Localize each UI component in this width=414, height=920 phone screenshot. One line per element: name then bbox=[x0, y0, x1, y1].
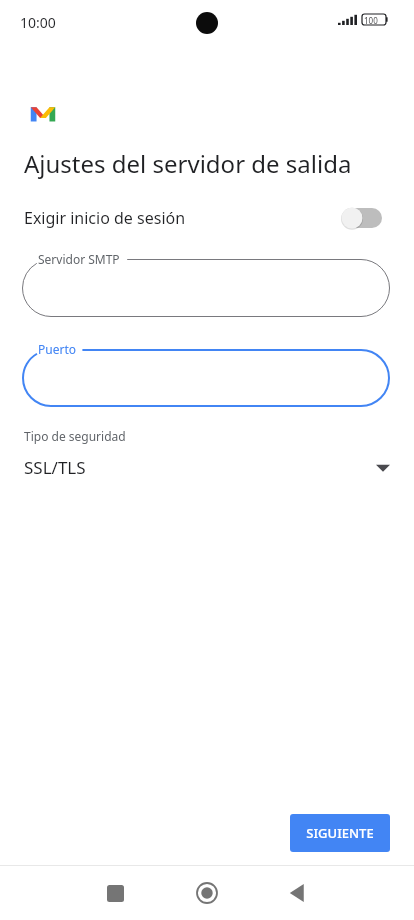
staticText: SIGUIENTE bbox=[306, 824, 374, 842]
staticText: Puerto bbox=[38, 341, 76, 357]
button[interactable]: Back bbox=[266, 866, 328, 920]
staticText: Ajustes del servidor de salida bbox=[24, 147, 352, 180]
button[interactable]: Servidor SMTP bbox=[22, 259, 390, 317]
staticText: Servidor SMTP bbox=[38, 251, 120, 267]
button[interactable]: SIGUIENTE bbox=[290, 814, 390, 852]
button[interactable]: Exigir inicio de sesión bbox=[0, 196, 414, 240]
staticText: Exigir inicio de sesión bbox=[24, 207, 186, 229]
button[interactable]: Puerto bbox=[22, 349, 390, 407]
button[interactable] bbox=[338, 203, 390, 233]
staticText: Tipo de seguridad bbox=[24, 428, 126, 444]
button[interactable]: Tipo de seguridad bbox=[0, 428, 414, 490]
button[interactable]: Recents bbox=[84, 866, 146, 920]
staticText: 100 bbox=[364, 15, 378, 26]
staticText: 10:00 bbox=[20, 13, 56, 32]
staticText: SSL/TLS bbox=[24, 456, 86, 479]
button[interactable]: Home bbox=[176, 866, 238, 920]
